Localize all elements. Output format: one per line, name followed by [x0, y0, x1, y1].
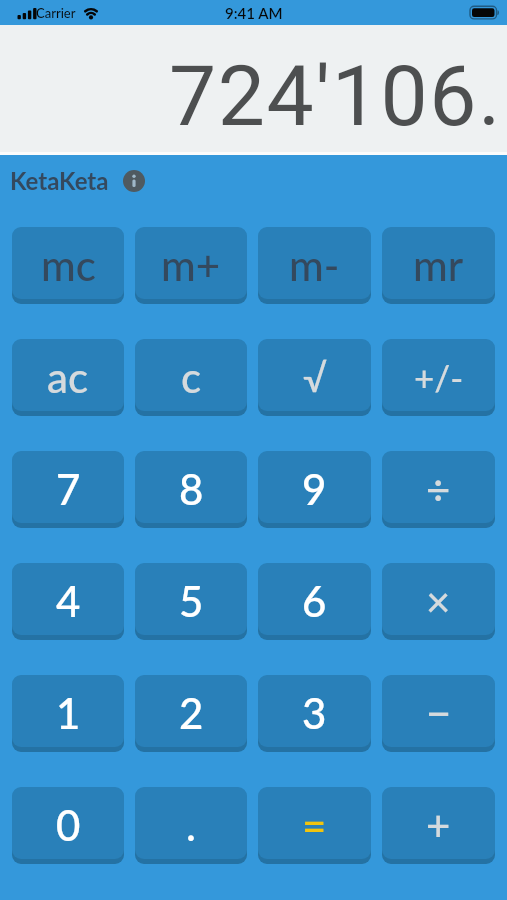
button[interactable]: 4: [12, 563, 124, 635]
button[interactable]: m-: [258, 227, 371, 299]
button[interactable]: 9: [258, 451, 371, 523]
button[interactable]: =: [258, 787, 371, 859]
staticText: 0: [56, 800, 81, 850]
staticText: 3: [302, 688, 327, 738]
button[interactable]: ÷: [382, 451, 495, 523]
button[interactable]: mc: [12, 227, 124, 299]
staticText: 9: [302, 464, 327, 514]
staticText: 8: [179, 464, 204, 514]
button[interactable]: mr: [382, 227, 495, 299]
staticText: ÷: [426, 464, 451, 514]
button[interactable]: 5: [135, 563, 247, 635]
button[interactable]: √: [258, 339, 371, 411]
button[interactable]: 6: [258, 563, 371, 635]
staticText: 1: [56, 688, 81, 738]
button[interactable]: ac: [12, 339, 124, 411]
staticText: mc: [41, 240, 96, 290]
staticText: c: [181, 352, 202, 402]
staticText: 2: [179, 688, 204, 738]
button[interactable]: 3: [258, 675, 371, 747]
staticText: 724'106.: [169, 47, 502, 145]
button[interactable]: +/-: [382, 339, 495, 411]
staticText: +: [426, 800, 451, 850]
button[interactable]: −: [382, 675, 495, 747]
staticText: m+: [161, 240, 221, 290]
staticText: √: [303, 354, 327, 400]
button[interactable]: c: [135, 339, 247, 411]
staticText: mr: [413, 240, 464, 290]
staticText: m-: [289, 240, 340, 290]
button[interactable]: 8: [135, 451, 247, 523]
staticText: 4: [56, 576, 81, 626]
staticText: KetaKeta: [10, 166, 109, 195]
button[interactable]: ×: [382, 563, 495, 635]
button[interactable]: 2: [135, 675, 247, 747]
staticText: 5: [179, 576, 204, 626]
button[interactable]: 7: [12, 451, 124, 523]
button[interactable]: m+: [135, 227, 247, 299]
staticText: Carrier: [36, 5, 76, 21]
staticText: 9:41 AM: [225, 4, 283, 22]
staticText: 6: [302, 576, 327, 626]
button[interactable]: +: [382, 787, 495, 859]
button[interactable]: 0: [12, 787, 124, 859]
staticText: .: [186, 800, 196, 850]
staticText: 7: [56, 464, 81, 514]
staticText: ac: [47, 352, 89, 402]
button[interactable]: [123, 170, 145, 192]
button[interactable]: .: [135, 787, 247, 859]
staticText: +/-: [414, 356, 464, 398]
button[interactable]: 1: [12, 675, 124, 747]
staticText: =: [302, 800, 327, 850]
staticText: ×: [426, 576, 451, 626]
staticText: −: [426, 686, 452, 739]
